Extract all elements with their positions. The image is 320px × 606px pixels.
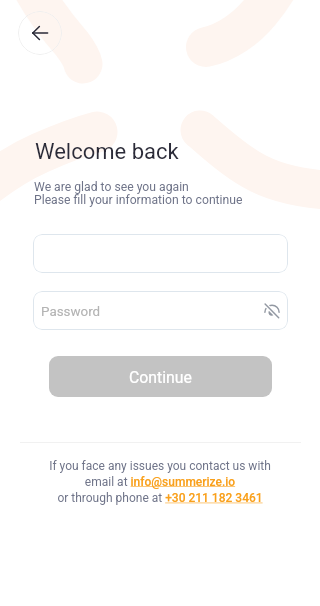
button[interactable]: Continue	[49, 356, 272, 397]
staticText: If you face any issues you contact us wi…	[0, 459, 320, 505]
button[interactable]	[33, 234, 288, 273]
staticText: Continue	[129, 368, 192, 387]
button[interactable]: Show password	[259, 298, 285, 324]
staticText: Welcome back	[35, 139, 179, 165]
staticText: Password	[41, 304, 101, 320]
button[interactable]: Password	[33, 291, 288, 330]
button[interactable]: Back	[18, 11, 62, 55]
staticText: We are glad to see you again Please fill…	[34, 180, 243, 207]
